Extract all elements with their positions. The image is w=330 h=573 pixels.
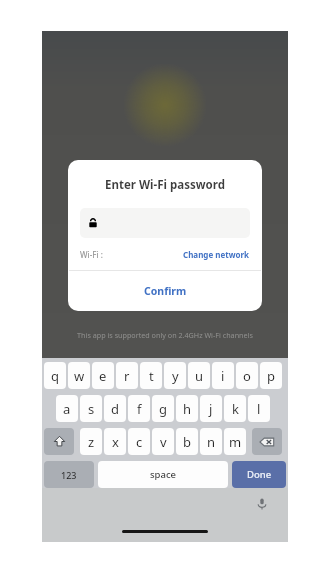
staticText: c <box>136 433 143 451</box>
button[interactable]: space <box>98 461 228 488</box>
staticText: t <box>149 367 154 385</box>
button[interactable]: z <box>80 428 102 455</box>
button[interactable]: g <box>152 395 174 422</box>
button[interactable]: Change network <box>183 249 250 260</box>
other: Voice input <box>256 498 268 510</box>
button[interactable]: w <box>68 362 90 389</box>
staticText: h <box>183 400 192 418</box>
button[interactable]: r <box>116 362 138 389</box>
button[interactable]: i <box>212 362 234 389</box>
staticText: m <box>229 433 242 451</box>
staticText: k <box>232 400 239 418</box>
button[interactable]: e <box>92 362 114 389</box>
button[interactable]: a <box>56 395 78 422</box>
staticText: q <box>51 367 59 385</box>
button[interactable]: f <box>128 395 150 422</box>
button[interactable]: 123 <box>44 461 94 488</box>
staticText: o <box>243 367 251 385</box>
staticText: n <box>207 433 216 451</box>
button[interactable]: j <box>200 395 222 422</box>
staticText: Confirm <box>144 284 187 298</box>
staticText: i <box>221 367 225 385</box>
staticText: Change network <box>183 249 250 260</box>
staticText: u <box>195 367 204 385</box>
staticText: a <box>63 400 71 418</box>
button[interactable]: q <box>44 362 66 389</box>
staticText: x <box>112 433 119 451</box>
staticText: d <box>111 400 119 418</box>
staticText: space <box>150 468 177 481</box>
staticText: r <box>124 367 130 385</box>
button[interactable]: Password <box>80 208 250 238</box>
staticText: z <box>88 433 95 451</box>
staticText: g <box>159 400 167 418</box>
staticText: w <box>74 367 85 385</box>
button[interactable]: b <box>176 428 198 455</box>
staticText: f <box>137 400 142 418</box>
staticText: b <box>183 433 191 451</box>
staticText: s <box>88 400 95 418</box>
button[interactable]: c <box>128 428 150 455</box>
button[interactable]: o <box>236 362 258 389</box>
button[interactable]: s <box>80 395 102 422</box>
staticText: v <box>160 433 167 451</box>
staticText: l <box>257 400 261 418</box>
button[interactable]: m <box>224 428 246 455</box>
button[interactable]: u <box>188 362 210 389</box>
staticText: j <box>209 400 213 418</box>
button[interactable]: t <box>140 362 162 389</box>
button[interactable]: l <box>248 395 270 422</box>
other: Password <box>88 218 98 228</box>
button[interactable]: Shift <box>44 428 74 455</box>
button[interactable]: d <box>104 395 126 422</box>
staticText: y <box>172 367 179 385</box>
button[interactable]: Done <box>232 461 286 488</box>
button[interactable]: y <box>164 362 186 389</box>
staticText: p <box>267 367 275 385</box>
button[interactable]: n <box>200 428 222 455</box>
staticText: Wi-Fi : <box>80 249 103 260</box>
button[interactable]: k <box>224 395 246 422</box>
button[interactable]: Voice input <box>254 496 270 512</box>
button[interactable]: Confirm <box>68 271 262 311</box>
staticText: e <box>99 367 107 385</box>
staticText: 123 <box>61 469 77 481</box>
staticText: Enter Wi-Fi password <box>68 177 262 193</box>
staticText: Done <box>247 468 272 481</box>
staticText: This app is supported only on 2.4GHz Wi-… <box>42 330 288 340</box>
button[interactable]: h <box>176 395 198 422</box>
button[interactable]: v <box>152 428 174 455</box>
button[interactable]: p <box>260 362 282 389</box>
button[interactable]: Delete <box>252 428 282 455</box>
button[interactable]: x <box>104 428 126 455</box>
